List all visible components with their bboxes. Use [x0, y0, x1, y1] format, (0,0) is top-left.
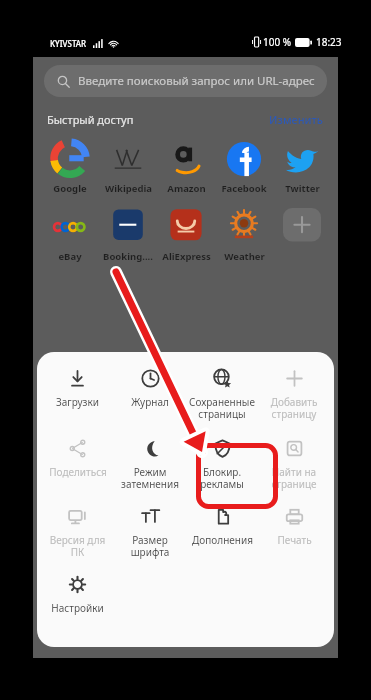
button[interactable]: Booking....: [99, 208, 157, 263]
button[interactable]: Режим затемнения: [114, 434, 186, 493]
staticText: Amazon: [167, 182, 206, 195]
button[interactable]: Печать: [258, 502, 330, 549]
staticText: Изменить: [269, 112, 324, 127]
staticText: Загрузки: [56, 395, 99, 409]
staticText: 100 %: [263, 35, 292, 49]
button[interactable]: Add shortcut: [273, 208, 331, 250]
button[interactable]: Twitter: [273, 140, 331, 195]
staticText: AliExpress: [162, 250, 211, 263]
button[interactable]: Загрузки: [41, 364, 114, 411]
button[interactable]: Размер шрифта: [114, 502, 186, 561]
button[interactable]: Журнал: [114, 364, 186, 411]
button[interactable]: Сохраненные страницы: [186, 364, 258, 423]
staticText: Версия для ПК: [44, 533, 111, 559]
staticText: Поделиться: [49, 465, 107, 479]
staticText: Журнал: [131, 395, 169, 409]
staticText: Booking....: [103, 250, 153, 263]
button[interactable]: Версия для ПК: [41, 502, 114, 561]
staticText: Настройки: [51, 601, 104, 615]
button[interactable]: eBay: [40, 208, 99, 263]
staticText: Twitter: [285, 182, 320, 195]
staticText: Режим затемнения: [117, 465, 183, 491]
button[interactable]: Facebook: [215, 140, 273, 195]
staticText: Сохраненные страницы: [189, 395, 255, 421]
staticText: Wikipedia: [105, 182, 152, 195]
button[interactable]: Amazon: [157, 140, 215, 195]
button[interactable]: Блокир. рекламы: [186, 434, 258, 493]
staticText: Дополнения: [192, 533, 253, 547]
button[interactable]: Google: [40, 140, 99, 195]
staticText: 18:23: [316, 35, 342, 49]
button[interactable]: Поделиться: [41, 434, 114, 481]
staticText: Google: [53, 182, 87, 195]
button[interactable]: Найти на странице: [258, 434, 330, 493]
staticText: Быстрый доступ: [47, 112, 134, 127]
staticText: Weather: [224, 250, 265, 263]
button[interactable]: Wikipedia: [99, 140, 157, 195]
button[interactable]: Добавить страницу: [258, 364, 330, 423]
staticText: Facebook: [221, 182, 267, 195]
button[interactable]: Дополнения: [186, 502, 258, 549]
staticText: Найти на странице: [261, 465, 327, 491]
staticText: Размер шрифта: [117, 533, 183, 559]
staticText: Введите поисковый запрос или URL-адрес: [78, 73, 315, 89]
staticText: Добавить страницу: [261, 395, 327, 421]
button[interactable]: Введите поисковый запрос или URL-адрес: [44, 65, 327, 97]
staticText: eBay: [58, 250, 82, 263]
button[interactable]: Быстрый доступ: [33, 110, 338, 129]
staticText: Блокир. рекламы: [189, 465, 255, 491]
staticText: KYIVSTAR: [50, 38, 87, 49]
button[interactable]: Настройки: [41, 570, 114, 617]
button[interactable]: Weather: [215, 208, 273, 263]
button[interactable]: AliExpress: [157, 208, 215, 263]
staticText: Печать: [277, 533, 312, 547]
